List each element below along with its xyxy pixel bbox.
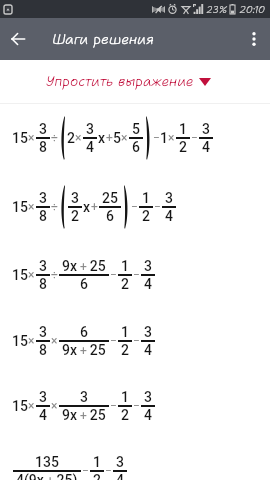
staticText: 4: [116, 472, 124, 480]
staticText: ×: [51, 399, 58, 413]
staticText: ÷: [51, 131, 58, 145]
staticText: 9x + 25: [62, 407, 106, 423]
staticText: 8: [39, 342, 47, 358]
staticText: 4: [165, 208, 173, 224]
staticText: −: [110, 399, 117, 413]
staticText: 2: [121, 276, 129, 292]
staticText: 3: [144, 258, 152, 274]
staticText: 4: [144, 342, 152, 358]
staticText: +: [91, 200, 98, 214]
button[interactable]: Упростить выражение: [0, 60, 270, 103]
staticText: 4: [144, 276, 152, 292]
staticText: 15: [12, 267, 28, 283]
staticText: ×: [75, 131, 82, 145]
staticText: 2: [67, 130, 75, 146]
staticText: 3: [39, 121, 47, 137]
staticText: 1: [121, 324, 129, 340]
staticText: 8: [39, 276, 47, 292]
staticText: −: [154, 200, 161, 214]
staticText: 3: [39, 324, 47, 340]
staticText: 4: [202, 139, 210, 155]
staticText: ×: [28, 399, 35, 413]
button[interactable]: Back: [0, 21, 36, 57]
staticText: 2: [121, 342, 129, 358]
staticText: 3: [144, 389, 152, 405]
staticText: −: [133, 268, 140, 282]
staticText: 2: [71, 208, 79, 224]
staticText: Упростить выражение: [46, 72, 194, 91]
staticText: ÷: [51, 268, 58, 282]
staticText: 5: [113, 130, 121, 146]
staticText: 1: [142, 190, 150, 206]
staticText: ×: [28, 334, 35, 348]
staticText: 8: [39, 208, 47, 224]
staticText: 3: [71, 190, 79, 206]
staticText: 3: [165, 190, 173, 206]
staticText: −: [133, 334, 140, 348]
staticText: 15: [12, 199, 28, 215]
staticText: 3: [86, 121, 94, 137]
staticText: 9x + 25: [62, 342, 106, 358]
staticText: ÷: [51, 200, 58, 214]
staticText: 3: [144, 324, 152, 340]
staticText: 20:10: [239, 3, 266, 16]
staticText: 23%: [206, 3, 228, 16]
staticText: 3: [39, 389, 47, 405]
staticText: ×: [28, 200, 35, 214]
staticText: −: [110, 268, 117, 282]
staticText: −: [133, 399, 140, 413]
staticText: −: [110, 334, 117, 348]
staticText: Шаги решения: [52, 30, 154, 49]
staticText: 25: [102, 190, 118, 206]
staticText: 3: [39, 258, 47, 274]
staticText: 2: [179, 139, 187, 155]
staticText: 2: [142, 208, 150, 224]
staticText: −: [191, 131, 198, 145]
staticText: 6: [80, 276, 88, 292]
staticText: 6: [106, 208, 114, 224]
staticText: +: [106, 131, 113, 145]
staticText: 9x + 25: [62, 258, 106, 274]
staticText: −: [131, 200, 138, 214]
staticText: 2: [121, 407, 129, 423]
staticText: 1: [179, 121, 187, 137]
staticText: 3: [80, 389, 88, 405]
staticText: x: [83, 199, 91, 215]
staticText: 8: [39, 139, 47, 155]
staticText: 3: [116, 454, 124, 470]
staticText: ×: [28, 131, 35, 145]
staticText: 2: [93, 472, 101, 480]
staticText: 3: [202, 121, 210, 137]
staticText: ×: [121, 131, 128, 145]
staticText: 4(9x + 25): [16, 472, 78, 480]
staticText: 3: [39, 190, 47, 206]
staticText: −: [105, 464, 112, 478]
staticText: 1: [160, 130, 168, 146]
staticText: 6: [80, 324, 88, 340]
staticText: 15: [12, 130, 28, 146]
staticText: 4: [39, 407, 47, 423]
staticText: 135: [35, 454, 59, 470]
staticText: 4: [144, 407, 152, 423]
staticText: −: [153, 131, 160, 145]
staticText: ×: [168, 131, 175, 145]
staticText: ×: [28, 268, 35, 282]
staticText: 1: [121, 258, 129, 274]
staticText: 15: [12, 398, 28, 414]
button[interactable]: More options: [234, 21, 270, 57]
staticText: ×: [51, 334, 58, 348]
staticText: 15: [12, 333, 28, 349]
staticText: 4: [86, 139, 94, 155]
staticText: −: [82, 464, 89, 478]
staticText: 1: [93, 454, 101, 470]
staticText: x: [98, 130, 106, 146]
staticText: 6: [132, 139, 140, 155]
staticText: 1: [121, 389, 129, 405]
staticText: 5: [132, 121, 140, 137]
